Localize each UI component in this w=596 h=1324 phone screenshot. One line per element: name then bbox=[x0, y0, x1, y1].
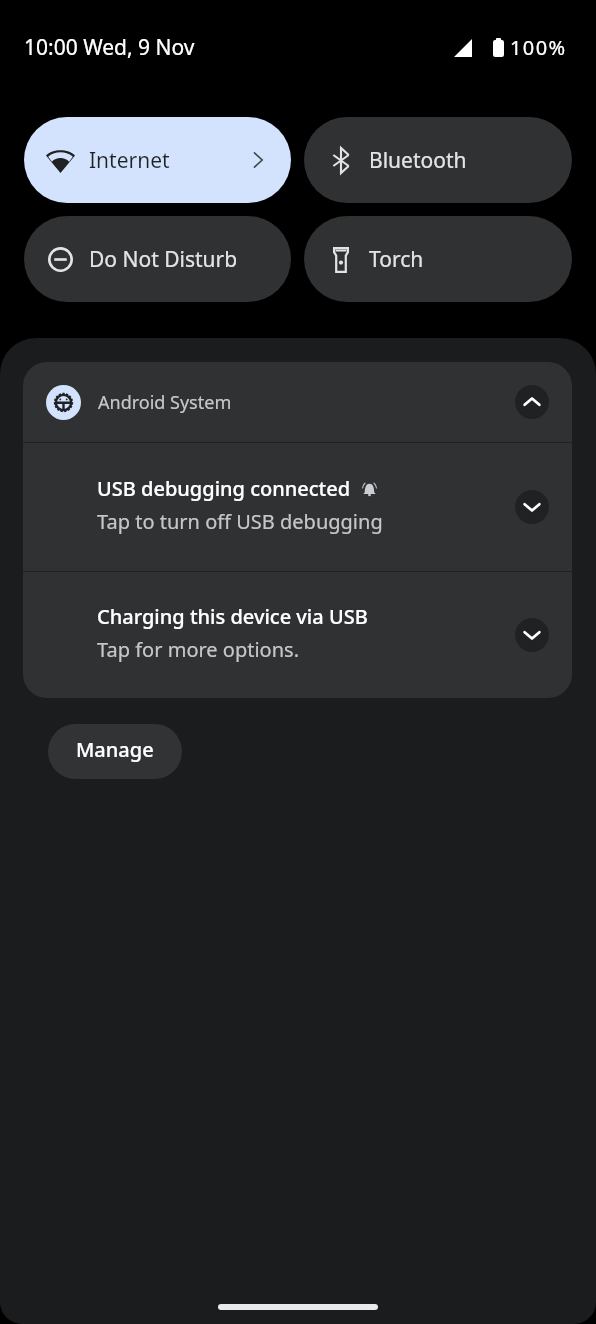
staticText: Tap for more options. bbox=[97, 636, 299, 663]
staticText: 10:00 Wed, 9 Nov bbox=[24, 33, 195, 62]
staticText: Internet bbox=[89, 146, 170, 175]
staticText: Tap to turn off USB debugging bbox=[97, 508, 383, 535]
staticText: Charging this device via USB bbox=[97, 603, 368, 630]
button[interactable]: Collapse group bbox=[515, 385, 549, 419]
button[interactable]: Android System bbox=[23, 362, 572, 442]
button[interactable]: Charging this device via USB bbox=[23, 572, 572, 698]
button[interactable]: Manage bbox=[48, 724, 182, 779]
button[interactable]: USB debugging connected bbox=[23, 443, 572, 571]
button[interactable]: Expand notification bbox=[515, 490, 549, 524]
staticText: Bluetooth bbox=[369, 146, 467, 175]
button[interactable]: Torch bbox=[304, 216, 572, 302]
staticText: Android System bbox=[98, 390, 232, 415]
staticText: USB debugging connected bbox=[97, 475, 351, 502]
staticText: Torch bbox=[369, 245, 424, 274]
button[interactable]: Internet bbox=[24, 117, 291, 203]
staticText: 100% bbox=[510, 34, 567, 61]
button[interactable]: Do Not Disturb bbox=[24, 216, 291, 302]
staticText: Manage bbox=[76, 736, 154, 763]
staticText: Do Not Disturb bbox=[89, 245, 238, 274]
button[interactable]: Expand notification bbox=[515, 618, 549, 652]
button[interactable]: Bluetooth bbox=[304, 117, 572, 203]
